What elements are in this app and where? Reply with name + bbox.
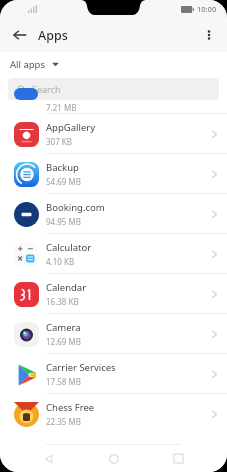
staticText: 307 KB [46,136,72,147]
staticText: 7.21 MB [46,102,77,113]
button[interactable]: Booking.com [0,194,227,234]
staticText: Booking.com [46,201,105,214]
button[interactable]: 7.21 MB [0,102,227,114]
button[interactable]: More options [196,22,222,48]
button[interactable]: Calculator [0,234,227,274]
staticText: Backup [46,161,79,174]
button[interactable]: Chess Free [0,394,227,434]
staticText: 94.95 MB [46,216,81,227]
button[interactable]: Carrier Services [0,354,227,394]
staticText: All apps [10,58,46,71]
button[interactable]: Search [8,78,219,100]
staticText: Search [32,83,61,95]
button[interactable]: All apps [10,58,59,71]
button[interactable]: Recent apps [163,445,193,472]
button[interactable]: Back [34,445,64,472]
staticText: 10:00 [197,4,217,14]
staticText: 12.69 MB [46,336,81,347]
staticText: Calculator [46,241,92,254]
button[interactable]: AppGallery [0,114,227,154]
staticText: 22.35 MB [46,416,81,427]
staticText: 54.69 MB [46,176,81,187]
staticText: Apps [38,27,68,44]
button[interactable]: Back [6,21,34,49]
button[interactable]: Calendar [0,274,227,314]
staticText: AppGallery [46,121,96,134]
staticText: 17.58 MB [46,376,81,387]
staticText: Carrier Services [46,361,116,374]
staticText: Chess Free [46,401,95,414]
button[interactable]: Backup [0,154,227,194]
staticText: 16.38 KB [46,296,79,307]
button[interactable]: Camera [0,314,227,354]
staticText: Calendar [46,281,87,294]
button[interactable]: Home [99,445,129,472]
staticText: 4.10 KB [46,256,75,267]
staticText: Camera [46,321,81,334]
